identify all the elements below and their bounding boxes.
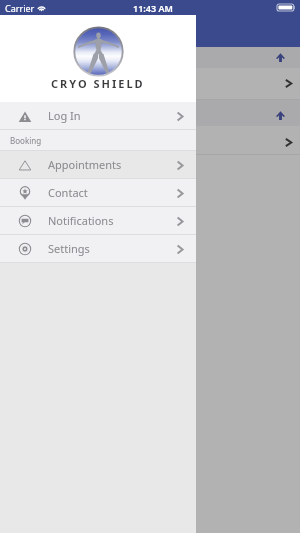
other: Open item [285,79,292,88]
staticText: Appointments [48,157,122,172]
button[interactable]: Collapse section [0,47,300,68]
staticText: Booking [10,135,42,146]
other: Battery [277,4,295,11]
staticText: Contact [48,185,88,200]
button[interactable]: Open item [0,68,300,99]
staticText: Notifications [48,213,114,228]
other: Open item [285,138,292,147]
other: Wi-Fi [37,4,46,12]
other: Collapse section [276,111,285,120]
button[interactable]: Settings [0,235,196,263]
staticText: Settings [48,241,90,256]
button[interactable]: Appointments [0,151,196,179]
other: Collapse section [276,53,285,62]
button[interactable]: Log In [0,102,196,130]
button[interactable]: Contact [0,179,196,207]
staticText: CRYO SHIELD [51,76,145,91]
button[interactable]: Collapse section [0,100,300,126]
button[interactable]: Open item [0,126,300,154]
staticText: Log In [48,108,81,123]
staticText: Carrier [5,2,35,14]
staticText: 11:43 AM [133,2,173,14]
button[interactable]: Notifications [0,207,196,235]
